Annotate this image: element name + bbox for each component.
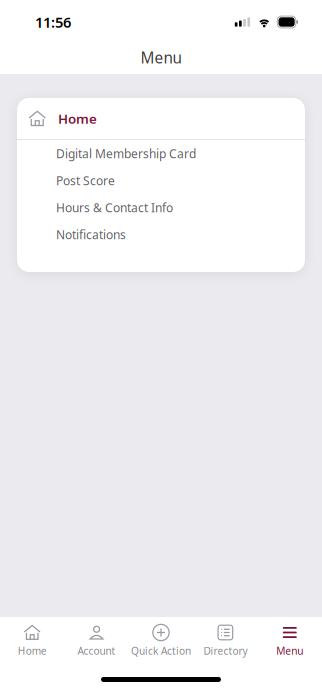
staticText: Home: [18, 644, 47, 658]
staticText: Notifications: [56, 226, 126, 243]
staticText: Account: [78, 644, 116, 658]
staticText: Digital Membership Card: [56, 145, 196, 162]
staticText: Hours & Contact Info: [56, 199, 173, 216]
button[interactable]: Menu: [258, 617, 322, 662]
staticText: Home: [58, 109, 97, 128]
button[interactable]: Digital Membership Card: [17, 140, 305, 167]
button[interactable]: Hours & Contact Info: [17, 194, 305, 221]
button[interactable]: Directory: [193, 617, 258, 662]
staticText: Directory: [203, 644, 247, 658]
button[interactable]: Account: [64, 617, 129, 662]
button[interactable]: Home: [0, 617, 64, 662]
button[interactable]: Home: [17, 98, 305, 139]
button[interactable]: Notifications: [17, 221, 305, 248]
button[interactable]: Quick Action: [129, 617, 193, 662]
staticText: 11:56: [35, 12, 71, 32]
staticText: Menu: [140, 47, 181, 68]
staticText: Quick Action: [131, 644, 191, 658]
staticText: Post Score: [56, 172, 115, 189]
staticText: Menu: [276, 644, 303, 658]
button[interactable]: Post Score: [17, 167, 305, 194]
